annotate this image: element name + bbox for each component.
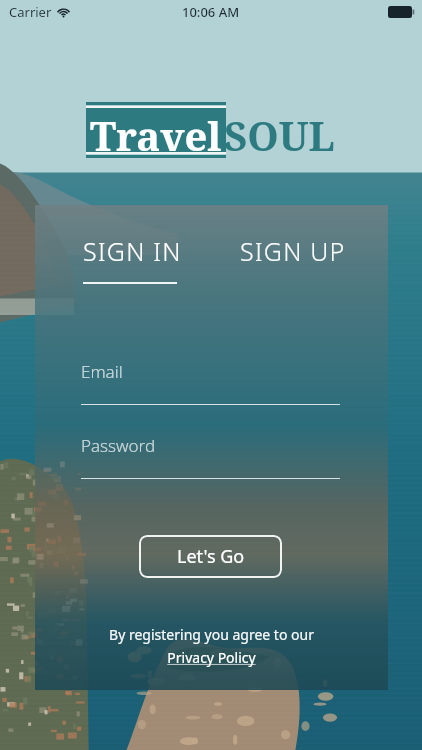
staticText: Travel [90,108,222,152]
button[interactable]: Privacy Policy [163,647,260,668]
staticText: Password [81,434,156,457]
staticText: Privacy Policy [167,648,256,667]
staticText: Let's Go [177,544,245,569]
button[interactable]: Let's Go [139,535,282,578]
button[interactable]: Password [81,434,340,479]
button[interactable]: Email [81,360,340,405]
button[interactable]: SIGN UP [238,231,348,271]
button[interactable]: SIGN IN [81,231,184,287]
staticText: By registering you agree to our [109,625,314,644]
staticText: SOUL [224,108,335,162]
staticText: SIGN UP [240,234,346,268]
staticText: SIGN IN [83,234,182,268]
staticText: 10:06 AM [182,3,240,21]
staticText: Email [81,360,123,383]
staticText: Carrier [9,3,52,21]
